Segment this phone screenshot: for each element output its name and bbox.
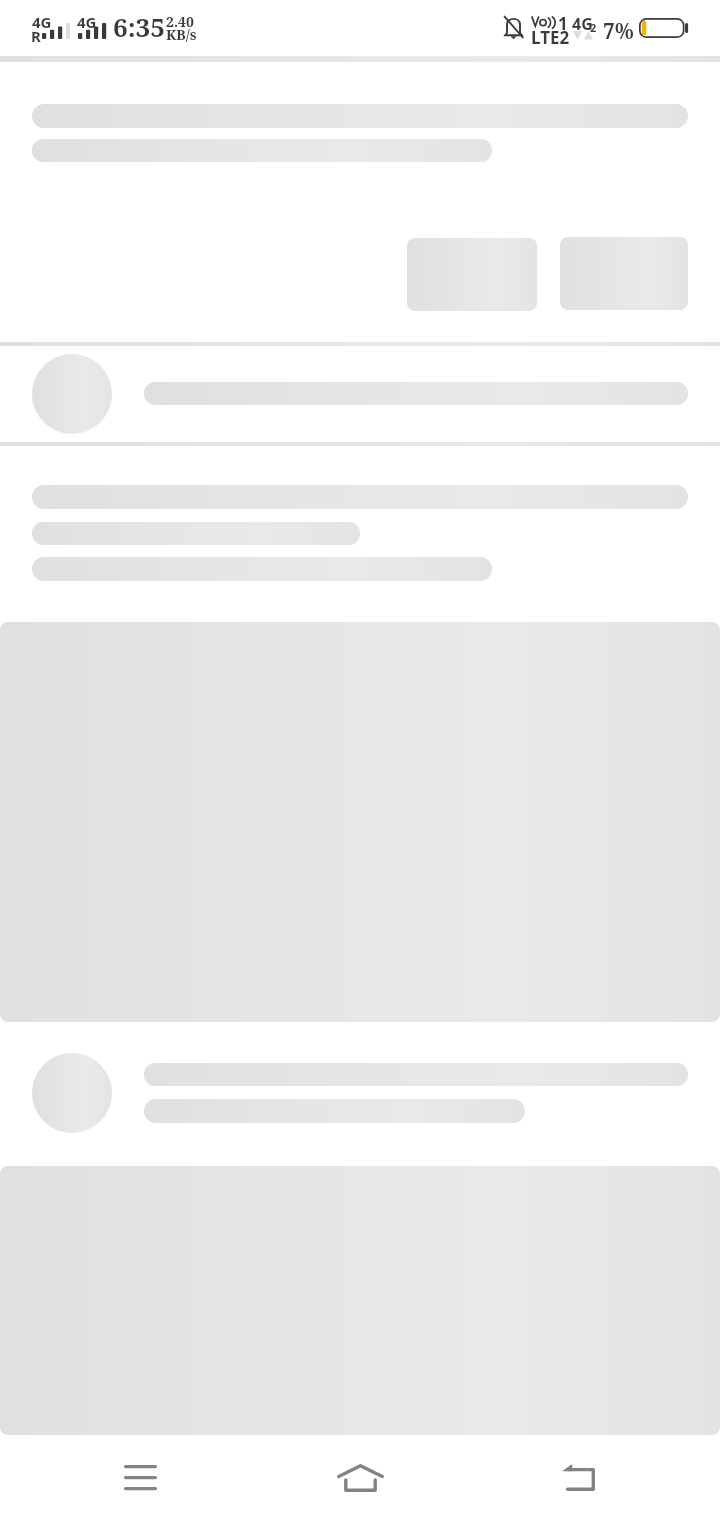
staticText: 2.40	[166, 12, 194, 31]
staticText: 1	[558, 12, 568, 35]
button[interactable]: Back	[544, 1435, 612, 1520]
button[interactable]: Home	[326, 1435, 394, 1520]
button[interactable]: Recent apps	[106, 1435, 174, 1520]
staticText: 6:35	[113, 9, 165, 44]
staticText: R	[31, 26, 41, 46]
button[interactable]: Loading post	[0, 1022, 720, 1435]
staticText: 4G	[77, 12, 97, 32]
button[interactable]: Loading header	[0, 62, 720, 342]
staticText: 4G	[32, 12, 52, 32]
staticText: LTE2	[531, 26, 570, 49]
button[interactable]: Loading list item	[0, 346, 720, 442]
staticText: 2	[590, 20, 597, 35]
button[interactable]: Loading post	[0, 446, 720, 1022]
staticText: 4G	[572, 13, 593, 35]
staticText: 7%	[603, 17, 634, 46]
staticText: KB/s	[166, 25, 197, 44]
